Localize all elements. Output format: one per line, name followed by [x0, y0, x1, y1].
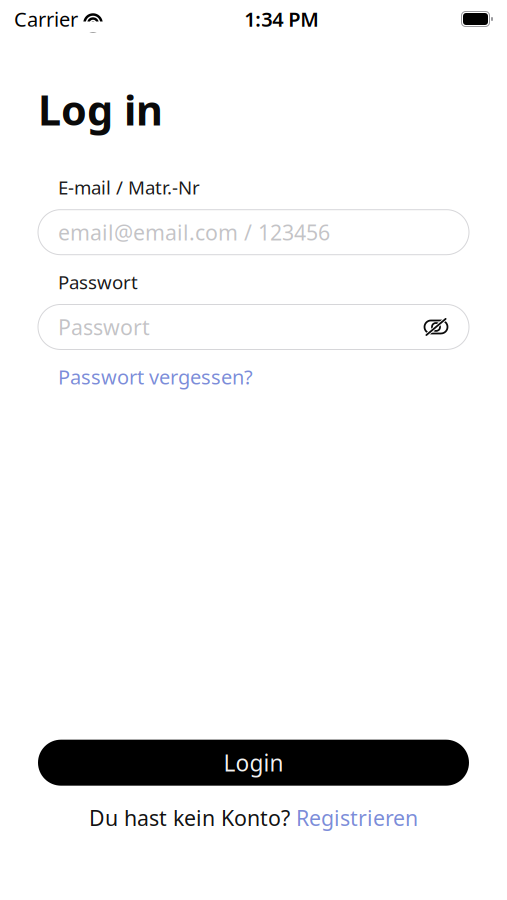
staticText: Du hast kein Konto? [89, 804, 296, 832]
staticText: Log in [38, 82, 163, 137]
staticText: Carrier [14, 6, 78, 32]
button[interactable]: email@email.com / 123456 [38, 210, 469, 255]
staticText: Login [223, 748, 283, 778]
button[interactable]: Passwort [38, 304, 469, 349]
staticText: Passwort [58, 313, 150, 341]
button[interactable]: Login [38, 740, 469, 786]
staticText: E-mail / Matr.-Nr [58, 175, 200, 200]
staticText: 1:34 PM [244, 6, 319, 32]
staticText: Registrieren [296, 804, 418, 832]
button[interactable]: Registrieren [296, 804, 418, 832]
button[interactable]: Passwort vergessen? [58, 363, 253, 390]
staticText: Passwort [58, 270, 138, 294]
staticText: email@email.com / 123456 [58, 218, 330, 246]
staticText: Passwort vergessen? [58, 363, 253, 390]
